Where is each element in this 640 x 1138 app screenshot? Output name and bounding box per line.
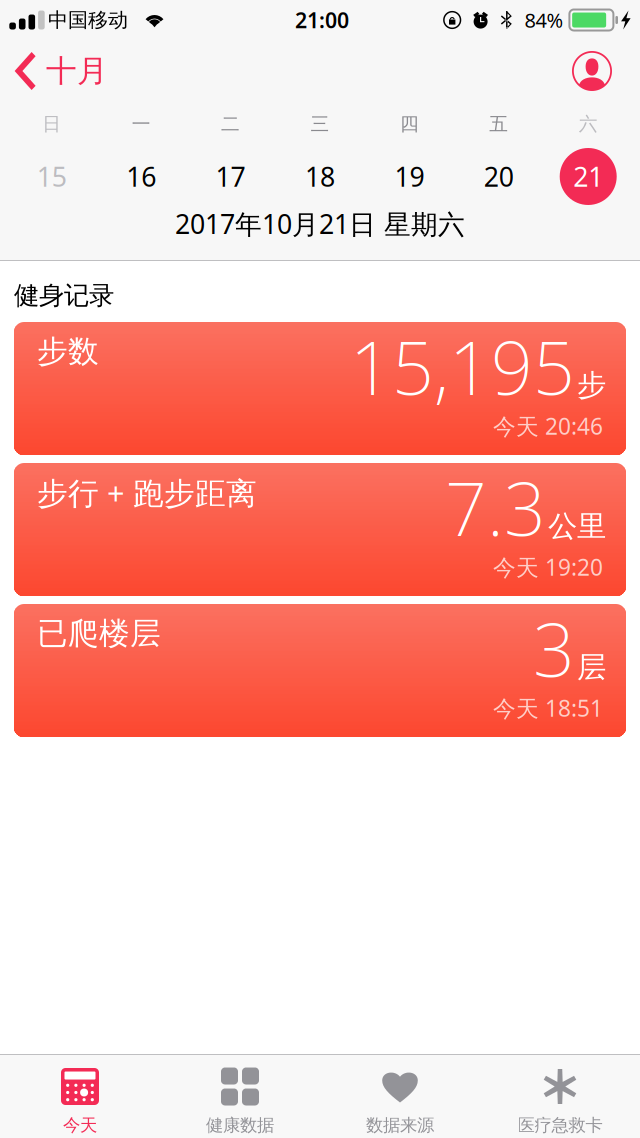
staticText: 数据来源: [366, 1114, 434, 1136]
staticText: 17: [216, 159, 246, 194]
staticText: 步数: [37, 333, 99, 370]
button[interactable]: 十月: [0, 45, 108, 97]
staticText: 三: [310, 112, 329, 135]
staticText: 步行 + 跑步距离: [37, 472, 257, 513]
staticText: 21: [573, 159, 603, 194]
staticText: 六: [579, 112, 598, 135]
staticText: 今天 18:51: [493, 693, 603, 723]
staticText: 19: [394, 159, 424, 194]
staticText: 五: [489, 112, 508, 135]
staticText: 一: [132, 112, 151, 135]
button[interactable]: 15: [7, 148, 96, 205]
staticText: 15,195: [350, 318, 575, 415]
staticText: 步: [577, 367, 606, 403]
button[interactable]: 数据来源: [320, 1054, 480, 1138]
button[interactable]: 16: [96, 148, 186, 205]
staticText: 二: [221, 112, 240, 135]
staticText: 中国移动: [48, 8, 128, 32]
button[interactable]: 步行 + 跑步距离: [14, 463, 626, 596]
staticText: 7.3: [445, 459, 546, 556]
staticText: 已爬楼层: [37, 615, 161, 652]
button[interactable]: 19: [365, 148, 454, 205]
staticText: 2017年10月21日 星期六: [175, 206, 465, 241]
button[interactable]: 健康数据: [160, 1054, 320, 1138]
staticText: 今天 19:20: [493, 552, 603, 582]
staticText: 21:00: [295, 6, 349, 34]
button[interactable]: 已爬楼层: [14, 604, 626, 737]
staticText: 四: [400, 112, 419, 135]
button[interactable]: 18: [275, 148, 365, 205]
staticText: 十月: [46, 52, 108, 90]
staticText: 20: [484, 159, 514, 194]
staticText: 今天 20:46: [493, 411, 603, 441]
staticText: 医疗急救卡: [517, 1114, 602, 1136]
button[interactable]: 17: [186, 148, 275, 205]
staticText: 日: [42, 112, 61, 135]
button[interactable]: 21: [543, 148, 633, 205]
staticText: 层: [577, 649, 606, 685]
button[interactable]: 今天: [0, 1054, 160, 1138]
button[interactable]: 20: [454, 148, 543, 205]
button[interactable]: 医疗急救卡: [480, 1054, 640, 1138]
staticText: 18: [305, 159, 335, 194]
staticText: 15: [37, 159, 67, 194]
staticText: 84%: [524, 7, 563, 33]
staticText: 16: [126, 159, 156, 194]
button[interactable]: 步数: [14, 322, 626, 455]
button[interactable]: 个人资料: [571, 44, 640, 98]
staticText: 健身记录: [14, 280, 114, 311]
staticText: 公里: [548, 508, 606, 544]
staticText: 今天: [63, 1114, 97, 1136]
staticText: 3: [533, 600, 575, 697]
staticText: 健康数据: [206, 1114, 274, 1136]
